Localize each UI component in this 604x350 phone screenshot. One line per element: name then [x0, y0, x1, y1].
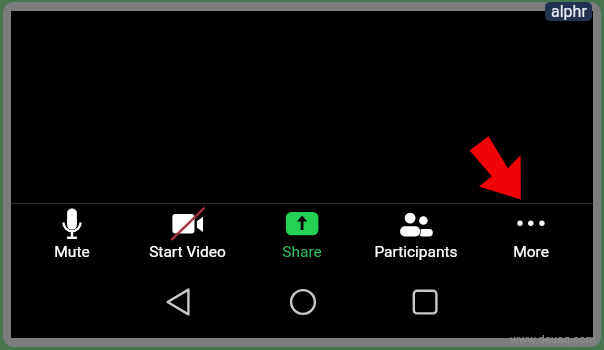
staticText: www.deuaq.com [510, 332, 596, 345]
staticText: alphr [551, 2, 587, 21]
button[interactable]: Participants [361, 203, 471, 260]
staticText: Share [282, 243, 322, 260]
button[interactable]: More [476, 203, 586, 260]
staticText: Start Video [149, 243, 226, 260]
button[interactable]: Share [247, 203, 357, 260]
staticText: Participants [374, 243, 458, 260]
button[interactable]: Recent apps [395, 276, 455, 328]
button[interactable]: Home [273, 276, 333, 328]
button[interactable]: Start Video [132, 203, 242, 260]
button[interactable]: Mute [17, 203, 127, 260]
staticText: More [513, 243, 549, 260]
staticText: Mute [54, 243, 90, 260]
button[interactable]: Back [148, 276, 208, 328]
